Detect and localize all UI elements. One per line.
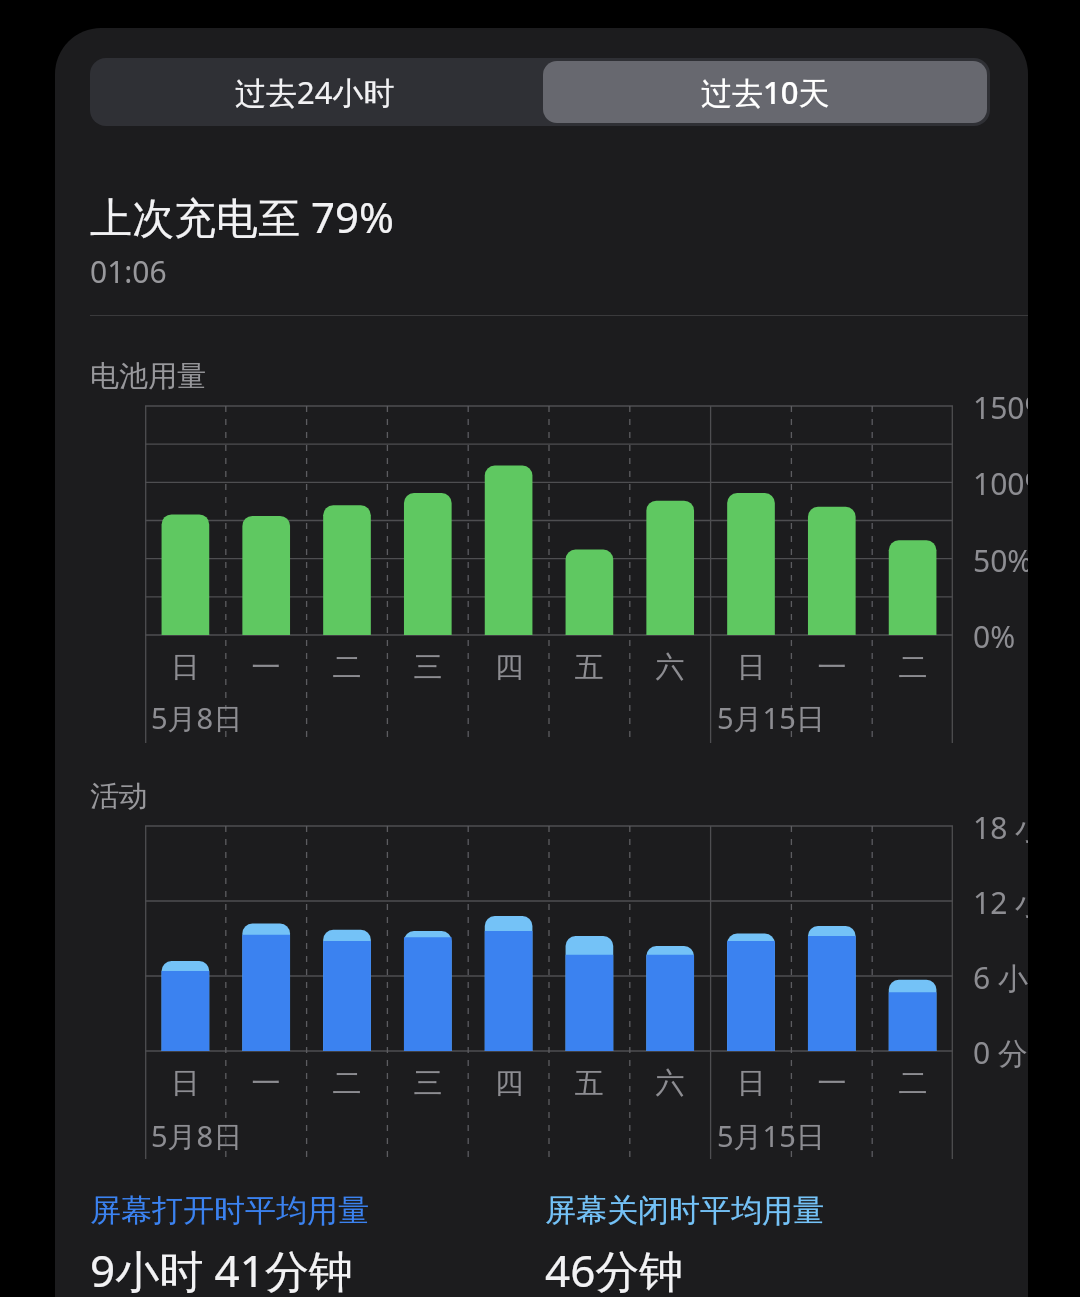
staticText: 五 <box>571 1065 607 1102</box>
staticText: 过去24小时 <box>235 71 395 113</box>
staticText: 过去10天 <box>701 71 830 113</box>
staticText: 屏幕打开时平均用量 <box>90 1191 369 1230</box>
staticText: 0% <box>973 616 1016 657</box>
staticText: 日 <box>167 1065 203 1102</box>
staticText: 日 <box>733 1065 769 1102</box>
staticText: 二 <box>895 1065 931 1102</box>
staticText: 46分钟 <box>545 1240 684 1297</box>
button[interactable]: 活动图表 <box>145 826 953 1161</box>
staticText: 6 小时 <box>973 957 1028 998</box>
staticText: 12 小时 <box>973 882 1028 923</box>
staticText: 四 <box>491 649 527 686</box>
staticText: 上次充电至 79% <box>90 188 394 245</box>
button[interactable]: 过去10天 <box>543 61 987 123</box>
staticText: 一 <box>814 649 850 686</box>
staticText: 六 <box>652 1065 688 1102</box>
staticText: 五 <box>571 649 607 686</box>
button[interactable]: 屏幕打开时平均用量 <box>90 1191 540 1297</box>
staticText: 二 <box>329 649 365 686</box>
staticText: 5月8日 <box>151 1116 243 1156</box>
staticText: 日 <box>733 649 769 686</box>
button[interactable]: 电池用量图表 <box>145 406 953 745</box>
staticText: 屏幕关闭时平均用量 <box>545 1191 824 1230</box>
staticText: 0 分钟 <box>973 1032 1028 1073</box>
staticText: 日 <box>167 649 203 686</box>
staticText: 50% <box>973 540 1028 581</box>
staticText: 5月8日 <box>151 698 243 738</box>
staticText: 一 <box>248 1065 284 1102</box>
staticText: 5月15日 <box>717 1116 825 1156</box>
staticText: 01:06 <box>90 251 167 292</box>
staticText: 四 <box>491 1065 527 1102</box>
button[interactable]: 过去24小时 <box>90 58 540 126</box>
staticText: 活动 <box>90 778 148 815</box>
staticText: 三 <box>410 649 446 686</box>
staticText: 电池用量 <box>90 358 206 395</box>
staticText: 5月15日 <box>717 698 825 738</box>
staticText: 150% <box>973 387 1028 428</box>
staticText: 100% <box>973 463 1028 504</box>
staticText: 六 <box>652 649 688 686</box>
staticText: 二 <box>895 649 931 686</box>
staticText: 一 <box>814 1065 850 1102</box>
staticText: 9小时 41分钟 <box>90 1240 353 1297</box>
staticText: 二 <box>329 1065 365 1102</box>
staticText: 三 <box>410 1065 446 1102</box>
button[interactable]: 屏幕关闭时平均用量 <box>545 1191 985 1297</box>
staticText: 一 <box>248 649 284 686</box>
staticText: 18 小时 <box>973 807 1028 848</box>
